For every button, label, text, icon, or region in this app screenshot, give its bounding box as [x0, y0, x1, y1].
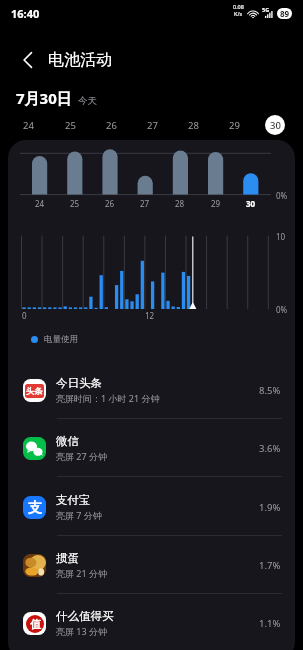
staticText: 7月30日 — [16, 88, 72, 108]
staticText: 电量使用 — [44, 334, 78, 345]
button[interactable]: 26 — [101, 115, 121, 135]
staticText: 3.6% — [259, 442, 281, 455]
staticText: 5G — [262, 6, 270, 13]
button[interactable]: 25 — [60, 115, 80, 135]
staticText: 今日头条 — [56, 376, 102, 390]
staticText: 电池活动 — [48, 50, 112, 70]
staticText: 1.1% — [259, 617, 281, 630]
staticText: 26 — [105, 198, 115, 209]
staticText: 0% — [276, 190, 288, 201]
staticText: 掼蛋 — [56, 551, 79, 565]
button[interactable]: 值 — [8, 594, 295, 650]
button[interactable]: 28 — [183, 115, 203, 135]
staticText: 值 — [30, 617, 41, 631]
staticText: 27 — [147, 119, 158, 132]
staticText: 亮屏 27 分钟 — [56, 450, 107, 462]
staticText: 25 — [70, 198, 80, 209]
staticText: 30 — [270, 119, 281, 132]
staticText: 30 — [246, 198, 256, 209]
staticText: 29 — [211, 198, 221, 209]
staticText: 支付宝 — [56, 493, 91, 507]
button[interactable]: Back — [8, 40, 48, 80]
staticText: 29 — [229, 119, 240, 132]
staticText: 26 — [106, 119, 117, 132]
staticText: 89 — [280, 8, 290, 19]
button[interactable]: 24 — [18, 115, 38, 135]
staticText: 亮屏 13 分钟 — [56, 625, 107, 637]
button[interactable]: 掼蛋 — [8, 536, 295, 594]
staticText: 今天 — [78, 95, 97, 107]
button[interactable]: 支 — [8, 478, 295, 536]
staticText: 25 — [65, 119, 76, 132]
staticText: 什么值得买 — [56, 609, 114, 623]
staticText: 0% — [276, 304, 288, 315]
staticText: 24 — [23, 119, 34, 132]
staticText: 27 — [140, 198, 150, 209]
staticText: 亮屏时间：1 小时 21 分钟 — [56, 392, 160, 404]
staticText: 10 — [276, 231, 286, 242]
staticText: 1.7% — [259, 559, 281, 572]
staticText: 0.08 — [233, 3, 244, 10]
staticText: 支 — [28, 499, 42, 517]
staticText: 8.5% — [259, 384, 281, 397]
staticText: 头条 — [26, 386, 43, 396]
button[interactable]: 27 — [142, 115, 162, 135]
staticText: 24 — [35, 198, 45, 209]
staticText: K/s — [234, 10, 243, 17]
staticText: 亮屏 21 分钟 — [56, 567, 107, 579]
button[interactable]: 头条 — [8, 361, 295, 419]
staticText: 微信 — [56, 434, 79, 448]
button[interactable]: 30 — [265, 115, 285, 135]
staticText: 12 — [145, 310, 155, 321]
button[interactable]: 29 — [224, 115, 244, 135]
staticText: 28 — [188, 119, 199, 132]
staticText: 亮屏 7 分钟 — [56, 509, 102, 521]
staticText: 1.9% — [259, 501, 281, 514]
staticText: 0 — [22, 310, 27, 321]
staticText: 16:40 — [11, 6, 40, 21]
button[interactable]: 微信 — [8, 419, 295, 477]
staticText: 28 — [175, 198, 185, 209]
